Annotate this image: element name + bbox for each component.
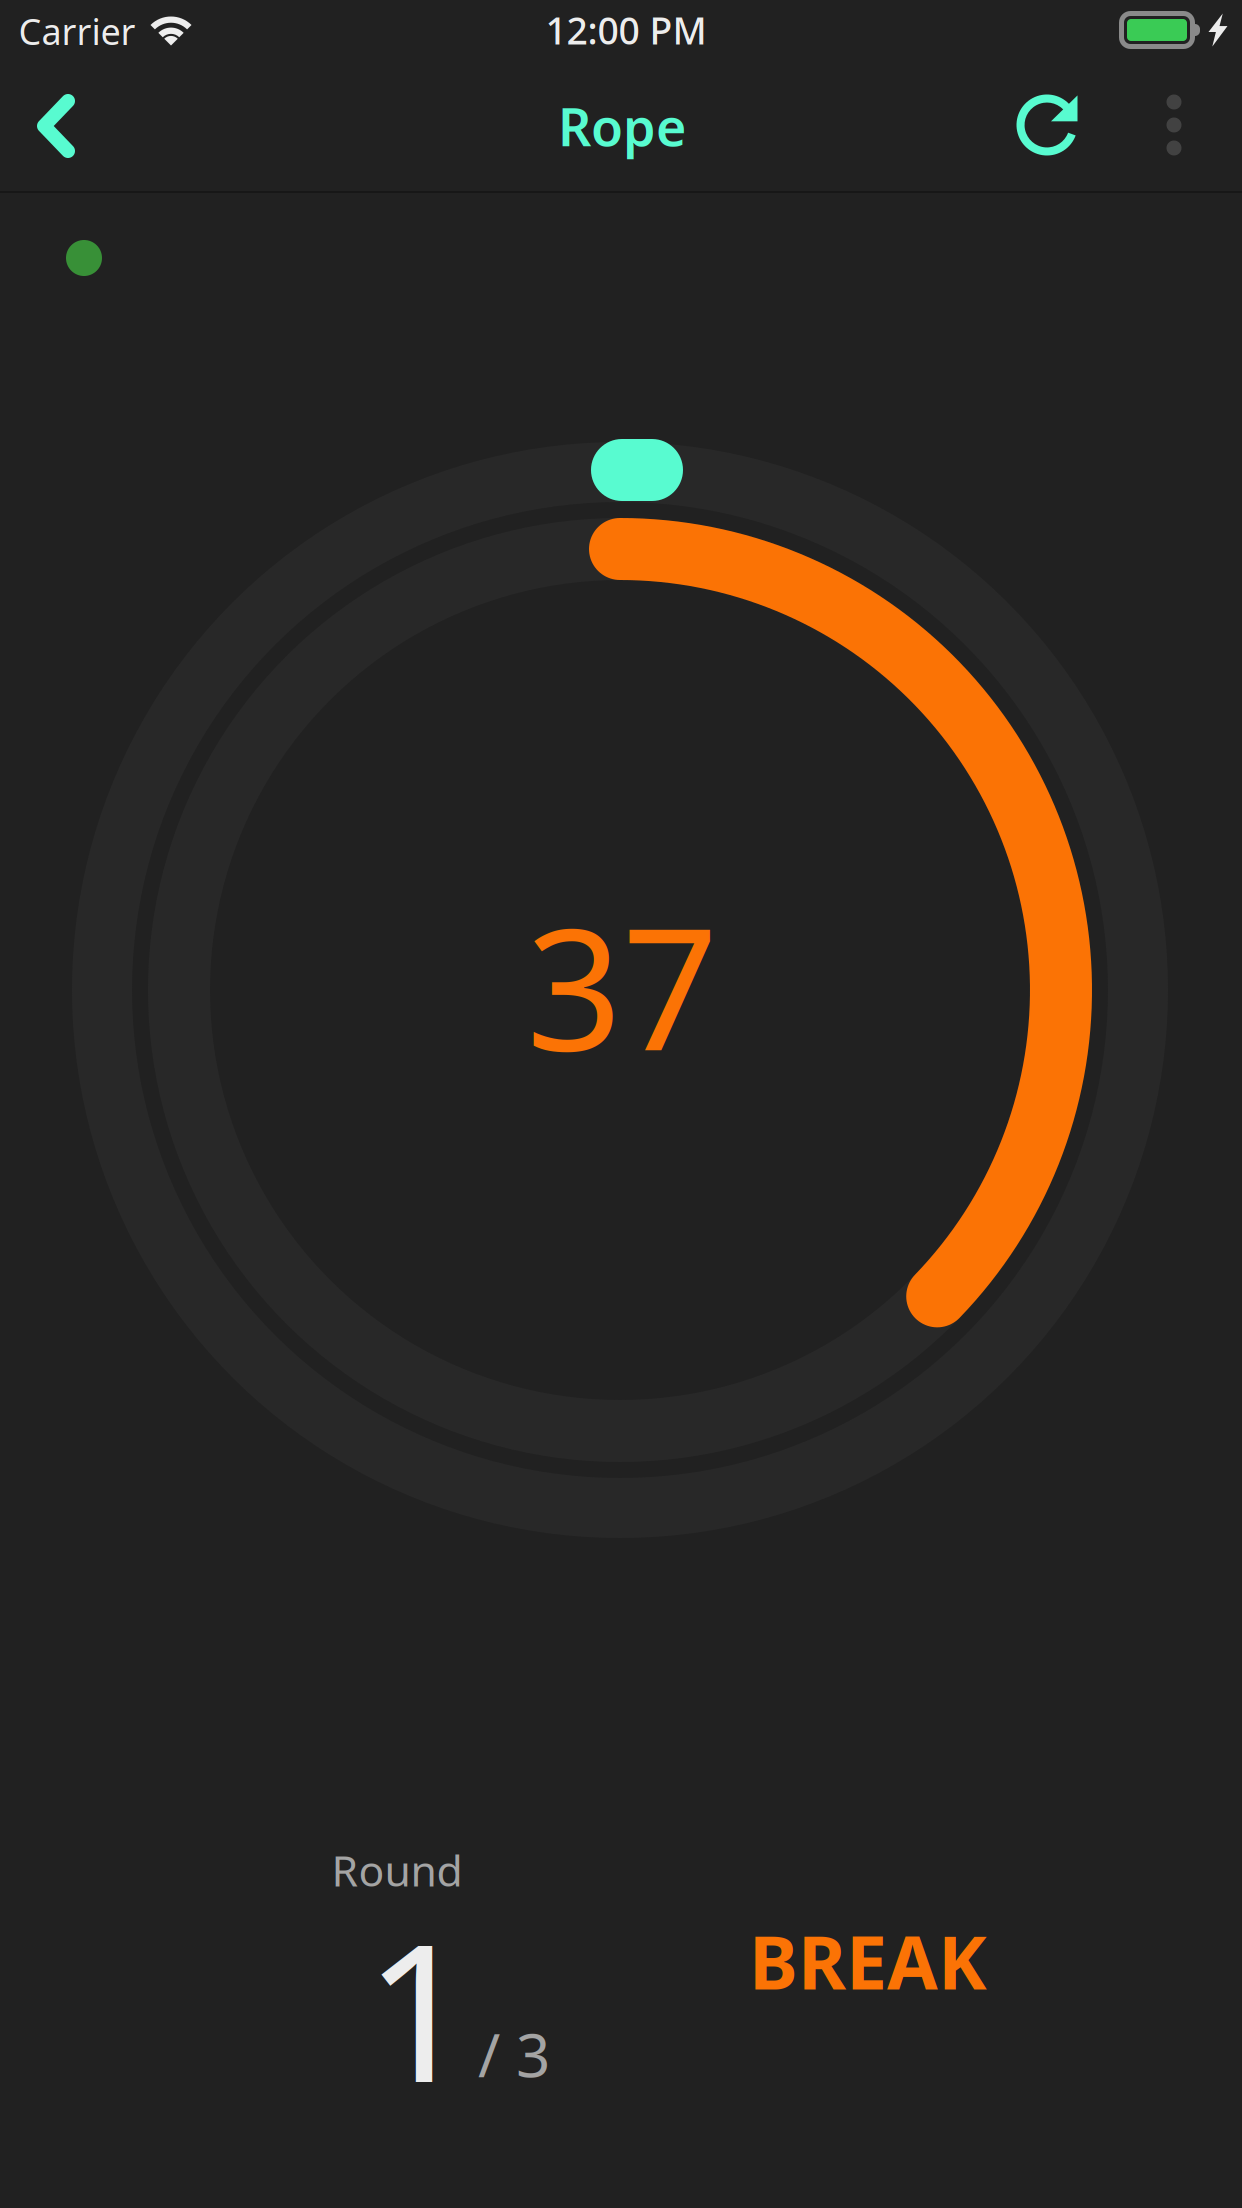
staticText: 12:00 PM — [545, 5, 706, 55]
button[interactable]: 37 seconds remaining, pause — [0, 0, 1242, 2208]
staticText: / 3 — [478, 2014, 550, 2094]
button[interactable]: More options — [1124, 63, 1224, 187]
button[interactable]: Restart workout — [987, 63, 1107, 187]
button[interactable]: Back — [0, 64, 112, 188]
staticText: 37 — [526, 873, 718, 1097]
staticText: BREAK — [749, 1912, 987, 2010]
staticText: Rope — [558, 91, 686, 161]
staticText: 1 — [364, 1881, 473, 2135]
staticText: Round — [331, 1842, 462, 1898]
staticText: Carrier — [18, 7, 135, 55]
